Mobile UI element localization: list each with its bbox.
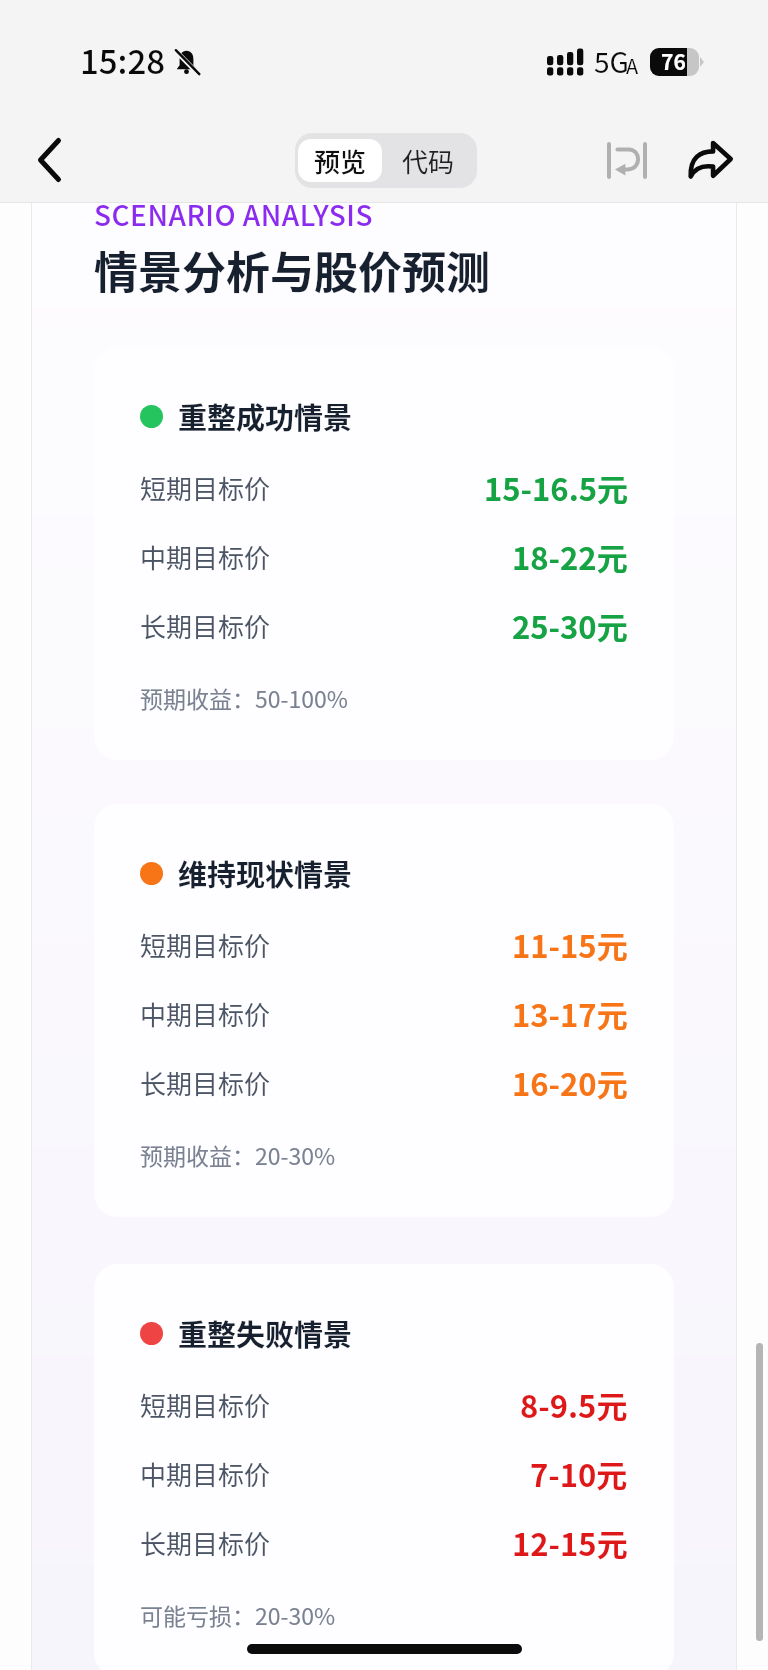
staticText: 12-15元 [512, 1520, 628, 1565]
staticText: 重整失败情景 [178, 1312, 353, 1354]
staticText: 25-30元 [512, 603, 628, 648]
button[interactable]: Rotate [587, 126, 667, 194]
staticText: 可能亏损： [140, 1598, 255, 1631]
staticText: 重整成功情景 [178, 395, 353, 437]
staticText: 20-30% [255, 1138, 336, 1171]
staticText: 中期目标价 [140, 995, 271, 1033]
staticText: 维持现状情景 [178, 852, 353, 894]
staticText: 短期目标价 [140, 926, 271, 964]
button[interactable]: 重整失败情景 [94, 1264, 674, 1670]
staticText: 长期目标价 [140, 607, 271, 645]
staticText: 16-20元 [512, 1060, 628, 1105]
staticText: 代码 [402, 142, 455, 180]
staticText: 13-17元 [512, 991, 628, 1036]
staticText: 20-30% [255, 1598, 336, 1631]
staticText: 预期收益： [140, 1138, 255, 1171]
staticText: 情景分析与股价预测 [94, 238, 490, 302]
staticText: 长期目标价 [140, 1064, 271, 1102]
staticText: 长期目标价 [140, 1524, 271, 1562]
button[interactable]: 维持现状情景 [94, 804, 674, 1217]
staticText: 76 [661, 46, 686, 74]
staticText: 中期目标价 [140, 538, 271, 576]
staticText: 短期目标价 [140, 469, 271, 507]
staticText: 5G [594, 41, 629, 82]
staticText: SCENARIO ANALYSIS [94, 194, 373, 235]
staticText: 15-16.5元 [484, 465, 628, 510]
button[interactable]: Back [17, 128, 81, 192]
staticText: A [626, 51, 639, 80]
button[interactable]: 预览 [298, 139, 382, 182]
staticText: 7-10元 [530, 1451, 628, 1496]
staticText: 11-15元 [512, 922, 628, 967]
staticText: 18-22元 [512, 534, 628, 579]
staticText: 15:28 [80, 36, 166, 84]
button[interactable]: Share [678, 124, 742, 194]
staticText: 短期目标价 [140, 1386, 271, 1424]
staticText: 中期目标价 [140, 1455, 271, 1493]
staticText: 50-100% [255, 681, 348, 714]
button[interactable]: 重整成功情景 [94, 347, 674, 760]
button[interactable]: 代码 [382, 139, 474, 182]
staticText: 8-9.5元 [520, 1382, 628, 1427]
staticText: 预览 [314, 142, 367, 180]
staticText: 预期收益： [140, 681, 255, 714]
